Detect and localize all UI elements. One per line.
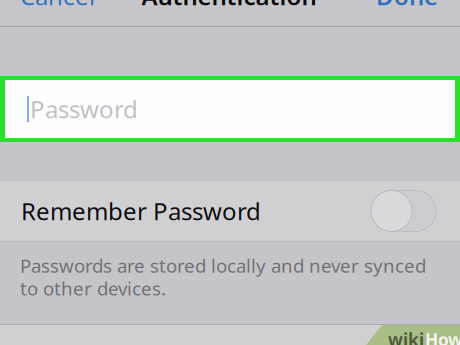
staticText: Done [376,0,438,12]
staticText: Password [30,93,138,125]
button[interactable]: Cancel [0,0,112,8]
staticText: Remember Password [21,195,261,227]
staticText: Passwords are stored locally and never s… [20,253,426,278]
staticText: wiki [388,328,424,345]
staticText: Cancel [20,0,95,12]
staticText: How [425,328,460,345]
button[interactable]: Remember Password [0,181,460,242]
button[interactable]: Done [346,0,460,8]
staticText: Authentication [141,0,316,12]
staticText: to other devices. [20,276,166,301]
